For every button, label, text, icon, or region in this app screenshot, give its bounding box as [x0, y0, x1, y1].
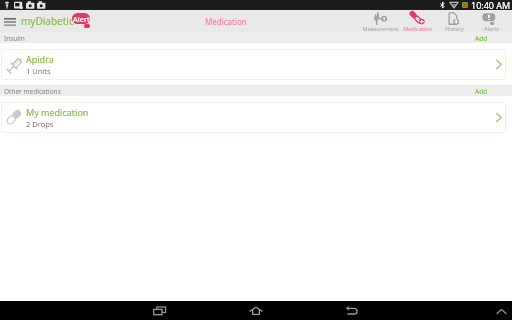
staticText: Add — [475, 34, 488, 43]
button[interactable]: Measurement — [362, 10, 399, 32]
button[interactable]: Alerts — [473, 10, 510, 32]
button[interactable]: Expand — [494, 304, 508, 318]
button[interactable]: Add — [475, 85, 488, 96]
button[interactable]: Home — [246, 301, 266, 320]
staticText: Alerts — [484, 25, 499, 32]
button[interactable]: History — [436, 10, 473, 32]
staticText: Alert — [73, 14, 90, 24]
button[interactable]: Menu — [0, 10, 20, 32]
staticText: History — [445, 25, 464, 32]
staticText: 2 Drops — [26, 119, 54, 129]
staticText: Medication — [205, 16, 247, 27]
button[interactable]: Recents — [150, 301, 170, 320]
button[interactable]: Medication — [399, 10, 436, 32]
staticText: Apidra — [26, 53, 54, 65]
staticText: Measurement — [362, 25, 399, 32]
staticText: 10:40 AM — [471, 0, 511, 9]
staticText: Other medications — [4, 87, 61, 96]
staticText: 1 Units — [26, 66, 51, 76]
button[interactable]: Add — [475, 32, 488, 43]
button[interactable]: Back — [342, 301, 362, 320]
staticText: My medication — [26, 106, 89, 118]
staticText: myDiabetic — [21, 14, 74, 28]
button[interactable]: My medication — [1, 102, 506, 133]
staticText: Add — [475, 87, 488, 96]
button[interactable]: Apidra — [1, 49, 506, 80]
staticText: Insulin — [4, 34, 25, 43]
staticText: Medication — [403, 25, 432, 32]
